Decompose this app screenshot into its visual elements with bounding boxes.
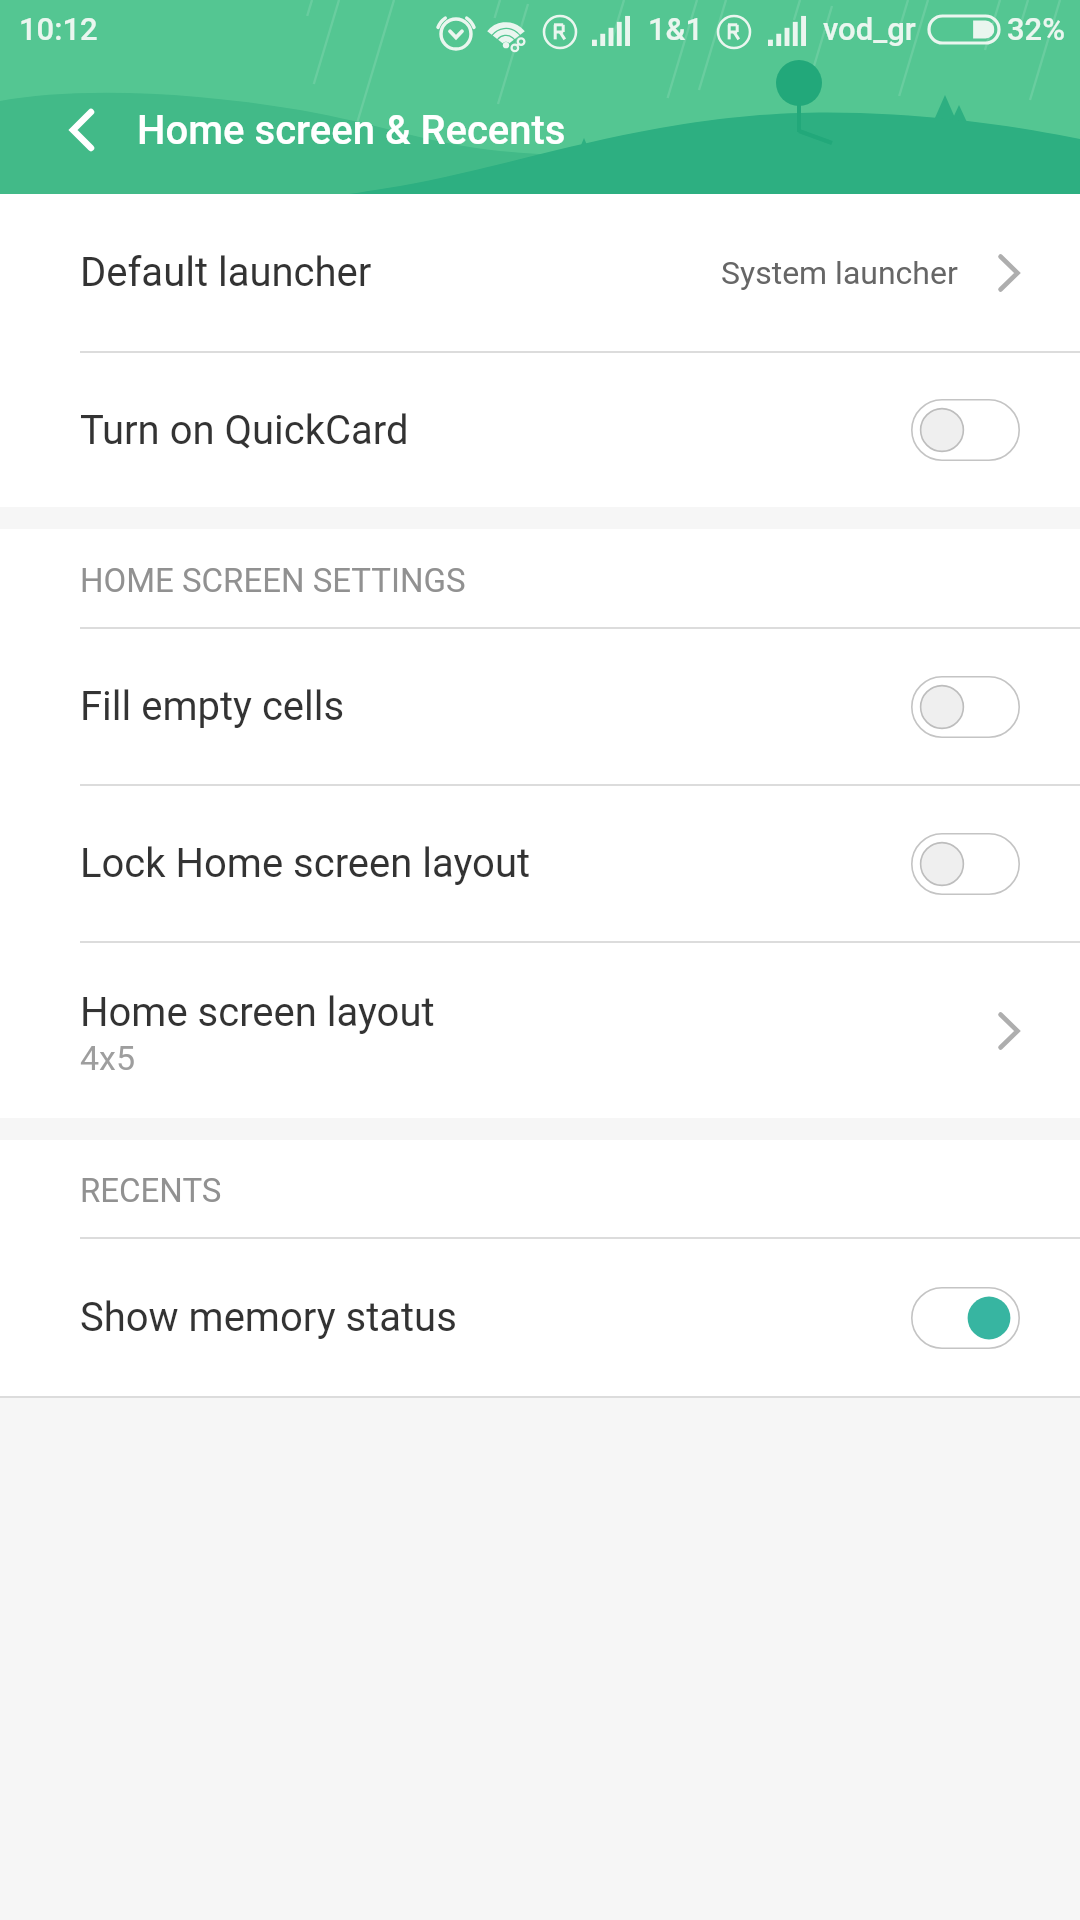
button[interactable]: Lock Home screen layout <box>0 786 1080 941</box>
button[interactable]: Default launcher <box>0 194 1080 351</box>
staticText: HOME SCREEN SETTINGS <box>80 561 466 600</box>
button[interactable]: Turn on QuickCard <box>0 353 1080 507</box>
staticText: Default launcher <box>80 249 372 296</box>
staticText: Fill empty cells <box>80 683 345 730</box>
staticText: 4x5 <box>80 1038 136 1078</box>
button[interactable]: Fill empty cells <box>0 629 1080 784</box>
staticText: vod_gr <box>823 11 916 47</box>
staticText: 10:12 <box>19 11 98 47</box>
staticText: 32% <box>1007 11 1066 47</box>
staticText: Home screen & Recents <box>137 107 566 154</box>
staticText: Show memory status <box>80 1294 457 1341</box>
staticText: Lock Home screen layout <box>80 840 531 887</box>
button[interactable]: Show memory status <box>0 1239 1080 1396</box>
button[interactable]: Back <box>47 96 115 164</box>
staticText: Home screen layout <box>80 989 435 1036</box>
button[interactable]: Fill empty cells, off <box>911 676 1020 738</box>
button[interactable]: Turn on QuickCard, off <box>911 399 1020 461</box>
staticText: System launcher <box>721 254 958 292</box>
button[interactable]: Lock Home screen layout, off <box>911 833 1020 895</box>
staticText: Turn on QuickCard <box>80 407 409 454</box>
button[interactable]: Home screen layout <box>0 943 1080 1118</box>
staticText: RECENTS <box>80 1171 222 1210</box>
staticText: 1&1 <box>648 11 704 47</box>
button[interactable]: Show memory status, on <box>911 1287 1020 1349</box>
